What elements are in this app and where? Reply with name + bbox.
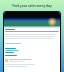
staticText: Find your calm every day	[0, 4, 64, 8]
